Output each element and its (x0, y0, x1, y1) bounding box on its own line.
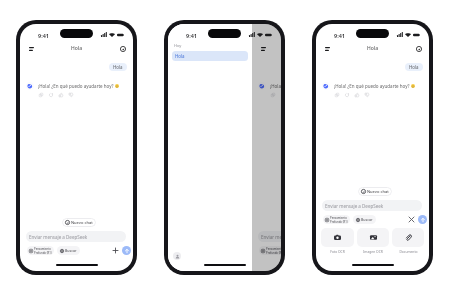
button[interactable]: Like (58, 92, 63, 97)
button[interactable]: Close attachments (407, 215, 416, 224)
staticText: ¡Hola! ¿En qué puedo ayudarte hoy? (334, 83, 410, 89)
staticText: Hola (113, 64, 123, 70)
button[interactable]: Pensamiento Profundo (R1) (323, 215, 350, 224)
staticText: Nuevo chat (71, 220, 93, 225)
button[interactable]: Profile (173, 252, 181, 260)
button[interactable]: Open menu (321, 42, 334, 55)
button[interactable]: Open menu (25, 42, 38, 55)
staticText: 9:41 (186, 32, 197, 39)
staticText: Nuevo chat (367, 189, 389, 194)
staticText: Buscar (361, 217, 373, 222)
button[interactable]: Nuevo chat (358, 187, 392, 196)
button[interactable]: Documento (392, 228, 424, 247)
button[interactable]: Buscar (57, 246, 80, 255)
button[interactable]: Like (354, 92, 359, 97)
button[interactable]: Add attachment (111, 246, 120, 255)
button[interactable]: New chat (412, 42, 425, 55)
staticText: Enviar mensaje a DeepSeek (325, 203, 384, 209)
staticText: Enviar mensaje a DeepSeek (29, 234, 88, 240)
button[interactable]: Dislike (68, 92, 73, 97)
staticText: Enviar mensaje a DeepSeek (261, 234, 281, 240)
button[interactable]: Enviar mensaje a DeepSeek (322, 200, 422, 211)
staticText: Imagen OCR (363, 249, 383, 253)
staticText: Documento (399, 249, 418, 253)
button[interactable]: Enviar mensaje a DeepSeek (26, 231, 126, 242)
button[interactable]: Enviar mensaje a DeepSeek (258, 231, 281, 242)
button[interactable]: Hola (405, 63, 423, 71)
button[interactable]: Open menu (257, 42, 270, 55)
button[interactable]: Send message (418, 215, 427, 224)
staticText: Pensamiento Profundo (R1) (330, 216, 348, 223)
button[interactable]: Imagen OCR (357, 228, 389, 247)
staticText: Buscar (65, 248, 77, 253)
button[interactable]: Foto OCR (321, 228, 354, 247)
staticText: Hoy (174, 43, 182, 48)
staticText: Pensamiento Profundo (R1) (34, 247, 52, 254)
button[interactable]: Pensamiento Profundo (R1) (259, 246, 281, 255)
button[interactable]: New chat (116, 42, 129, 55)
button[interactable]: Nuevo chat (62, 218, 96, 227)
staticText: Hola (367, 45, 379, 52)
button[interactable]: Hola (172, 51, 248, 61)
button[interactable]: Regenerate (344, 92, 349, 97)
button[interactable]: Copy (270, 92, 275, 97)
button[interactable]: Regenerate (48, 92, 53, 97)
staticText: 9:41 (334, 32, 345, 39)
button[interactable]: Hola (109, 63, 127, 71)
staticText: Hola (175, 53, 185, 59)
staticText: Hola (71, 45, 83, 52)
staticText: Foto OCR (330, 249, 345, 253)
button[interactable]: Copy (334, 92, 339, 97)
button[interactable]: Send message (122, 246, 131, 255)
button[interactable]: Copy (38, 92, 43, 97)
staticText: Pensamiento Profundo (R1) (266, 247, 281, 254)
staticText: ¡Hola! ¿En qué puedo ayudarte hoy? (38, 83, 114, 89)
staticText: Hola (409, 64, 419, 70)
button[interactable]: Buscar (353, 215, 376, 224)
button[interactable]: Dislike (364, 92, 369, 97)
staticText: ¡Hola! ¿En qué puedo ayudarte hoy? (270, 83, 281, 89)
button[interactable]: Pensamiento Profundo (R1) (27, 246, 54, 255)
staticText: 9:41 (38, 32, 49, 39)
